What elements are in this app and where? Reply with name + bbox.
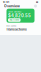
staticText: 9:41: [3, 0, 9, 4]
staticText: THIS WEEK: [6, 25, 16, 27]
button[interactable]: Total balance: [6, 9, 34, 23]
staticText: Overview: [4, 4, 20, 8]
staticText: $4,820.55: [8, 13, 31, 18]
staticText: Transactions: [6, 27, 27, 31]
staticText: Total balance: [8, 10, 21, 13]
staticText: Add money: [9, 19, 19, 21]
button[interactable]: Profile: [34, 4, 37, 7]
staticText: ▮▮: [36, 1, 38, 3]
